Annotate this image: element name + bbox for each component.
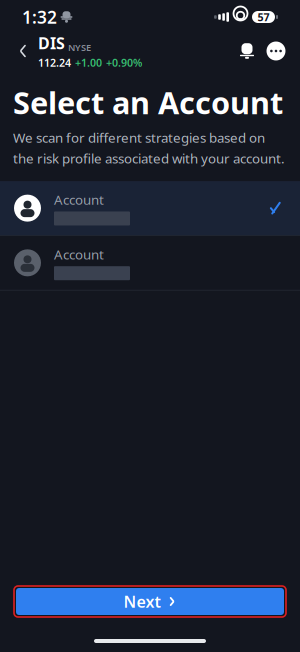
staticText: 112.24	[38, 55, 71, 70]
button[interactable]: Back	[8, 34, 38, 68]
staticText: DIS	[38, 32, 65, 53]
button[interactable]: Next	[14, 586, 286, 617]
staticText: +1.00	[75, 55, 102, 70]
staticText: 1:32	[22, 5, 57, 28]
button[interactable]: Account	[0, 181, 300, 236]
staticText: NYSE	[68, 41, 91, 53]
staticText: We scan for different strategies based o…	[13, 129, 285, 167]
staticText: +0.90%	[106, 55, 142, 70]
staticText: Account	[54, 245, 104, 263]
button[interactable]: More options	[262, 34, 290, 68]
staticText: Select an Account	[13, 82, 283, 123]
staticText: 57	[257, 10, 269, 24]
staticText: Next	[123, 591, 160, 612]
button[interactable]: Notifications	[232, 34, 262, 68]
staticText: Account	[54, 191, 104, 208]
button[interactable]: Account	[0, 236, 300, 290]
